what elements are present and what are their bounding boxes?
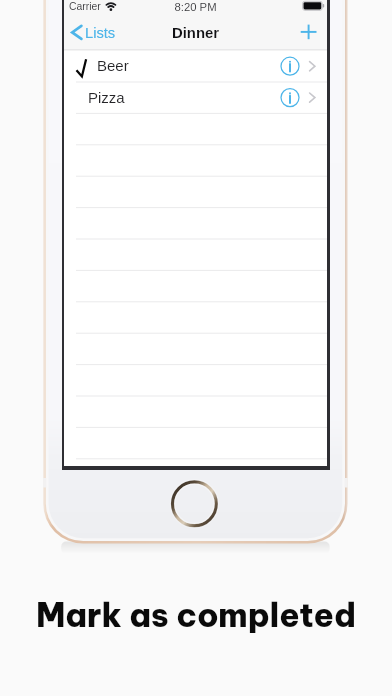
staticText: Lists	[85, 25, 116, 41]
staticText: 8:20 PM	[64, 1, 327, 14]
staticText: Beer	[97, 57, 129, 74]
button[interactable]: Add item	[294, 18, 323, 46]
staticText: Carrier	[69, 1, 101, 13]
staticText: Dinner	[64, 25, 327, 42]
button[interactable]: Beer	[64, 50, 327, 81]
staticText: Mark as completed	[0, 594, 392, 635]
staticText: Pizza	[88, 89, 125, 106]
button[interactable]: Item details	[279, 88, 300, 109]
button[interactable]: Back to Lists	[67, 19, 121, 45]
button[interactable]: Item details	[279, 56, 300, 77]
button[interactable]: Pizza	[64, 82, 327, 113]
